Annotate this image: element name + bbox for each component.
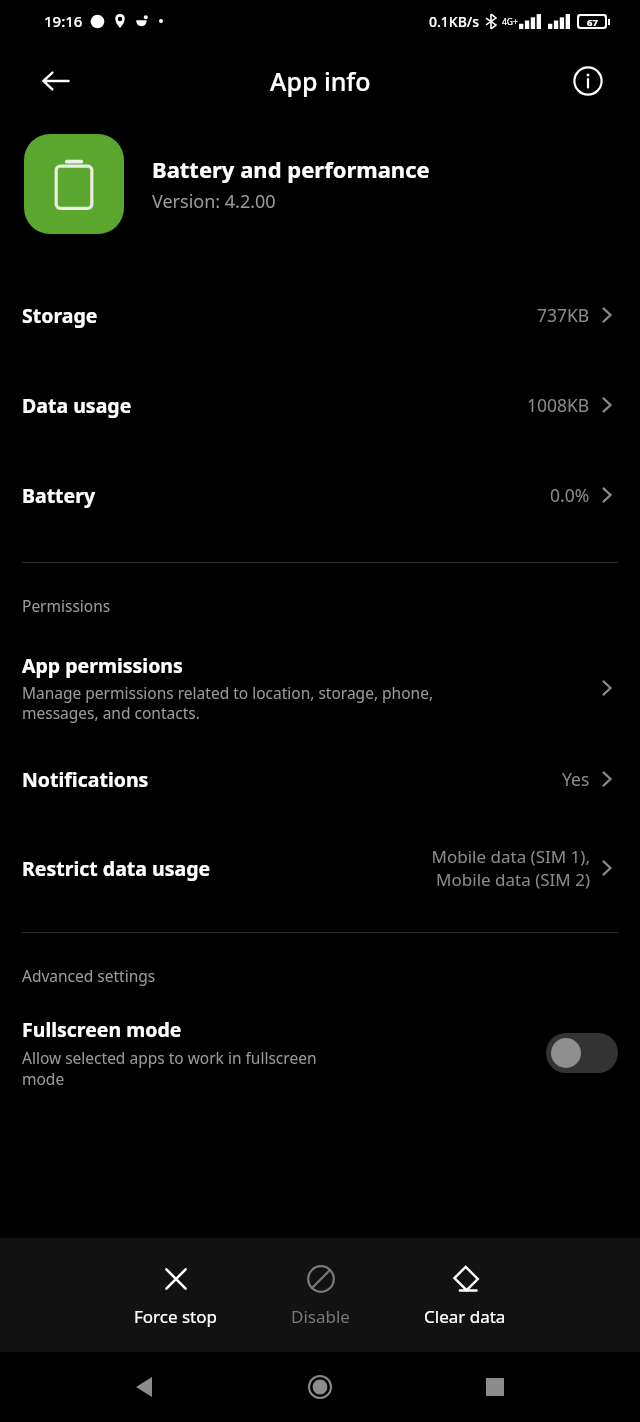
staticText: Mobile data (SIM 2) [436, 868, 590, 891]
staticText: 0.1KB/s [429, 12, 480, 31]
button[interactable]: Clear data [410, 1255, 520, 1336]
staticText: Notifications [22, 766, 149, 793]
staticText: Mobile data (SIM 1), [431, 845, 590, 868]
staticText: Battery and performance [152, 154, 430, 184]
staticText: Disable [291, 1305, 350, 1328]
button[interactable]: App permissions [0, 640, 640, 736]
button[interactable]: Home [290, 1357, 350, 1417]
staticText: 19:16 [44, 11, 83, 31]
button[interactable]: Back [115, 1357, 175, 1417]
staticText: Advanced settings [22, 965, 156, 986]
staticText: Restrict data usage [22, 855, 211, 882]
button[interactable]: Recents [465, 1357, 525, 1417]
button[interactable]: Fullscreen mode [0, 1010, 640, 1096]
staticText: Battery [22, 482, 96, 509]
staticText: 4G+ [502, 16, 518, 28]
staticText: 1008KB [527, 393, 590, 417]
button[interactable]: Force stop [120, 1255, 231, 1336]
staticText: Data usage [22, 392, 132, 419]
button[interactable]: Notifications [0, 736, 640, 822]
button[interactable]: Data usage [0, 360, 640, 450]
button[interactable]: Disable [277, 1255, 364, 1336]
staticText: Force stop [134, 1305, 217, 1328]
staticText: 67 [587, 16, 598, 27]
button[interactable]: App details [562, 55, 614, 107]
button[interactable]: Fullscreen mode toggle [546, 1033, 618, 1073]
button[interactable]: Battery [0, 450, 640, 540]
staticText: 737KB [537, 303, 590, 327]
staticText: Permissions [22, 595, 111, 616]
staticText: Version: 4.2.00 [152, 189, 276, 214]
staticText: Manage permissions related to location, … [22, 682, 434, 724]
staticText: 0.0% [550, 483, 590, 507]
button[interactable]: Restrict data usage [0, 822, 640, 914]
button[interactable]: Back [28, 53, 84, 109]
staticText: App permissions [22, 652, 183, 679]
staticText: Clear data [424, 1305, 506, 1328]
staticText: App info [270, 64, 371, 98]
staticText: Fullscreen mode [22, 1016, 182, 1043]
staticText: Allow selected apps to work in fullscree… [22, 1047, 317, 1090]
staticText: Storage [22, 302, 98, 329]
staticText: Yes [562, 767, 590, 791]
button[interactable]: Storage [0, 270, 640, 360]
